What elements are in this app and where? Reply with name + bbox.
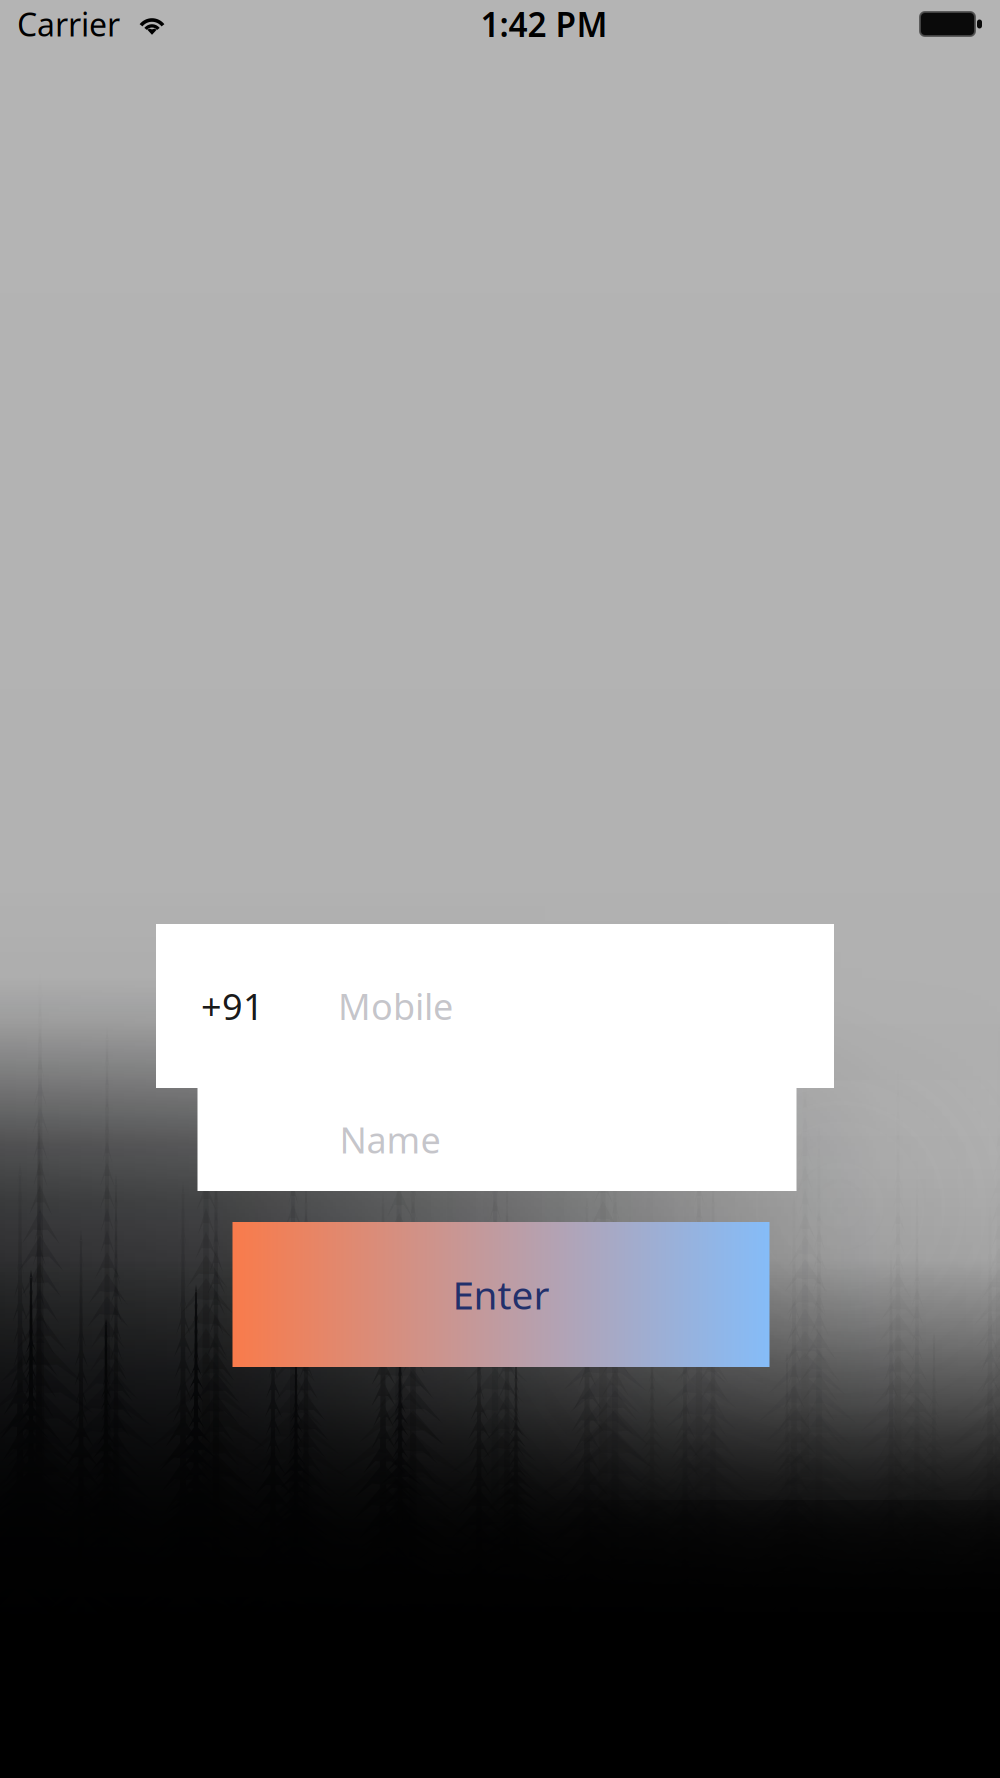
staticText: Carrier	[17, 3, 120, 45]
staticText: 1:42 PM	[480, 2, 607, 46]
button[interactable]: +91	[161, 924, 839, 1088]
staticText: Mobile	[338, 982, 453, 1030]
button[interactable]: Name	[200, 1088, 799, 1191]
staticText: Enter	[452, 1269, 549, 1320]
button[interactable]: Enter	[231, 1222, 768, 1367]
staticText: Name	[339, 1116, 440, 1163]
staticText: +91	[201, 982, 264, 1030]
